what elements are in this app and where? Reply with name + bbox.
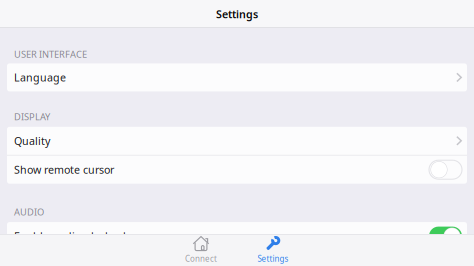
staticText: Show remote cursor [14, 163, 114, 177]
staticText: Quality [14, 134, 50, 148]
button[interactable]: Quality [7, 127, 467, 155]
staticText: Settings [257, 253, 288, 264]
staticText: DISPLAY [14, 110, 50, 123]
button[interactable]: Language [7, 63, 467, 91]
button[interactable]: Enable audio playback [7, 222, 467, 250]
button[interactable]: Settings [237, 234, 309, 266]
staticText: Enable audio playback [14, 229, 129, 243]
button[interactable]: Show remote cursor [7, 156, 467, 184]
staticText: AUDIO [14, 206, 44, 218]
staticText: Language [14, 70, 66, 84]
staticText: USER INTERFACE [14, 48, 87, 60]
staticText: Connect [185, 253, 217, 264]
button[interactable]: Connect [165, 234, 237, 266]
staticText: Settings [216, 7, 258, 21]
